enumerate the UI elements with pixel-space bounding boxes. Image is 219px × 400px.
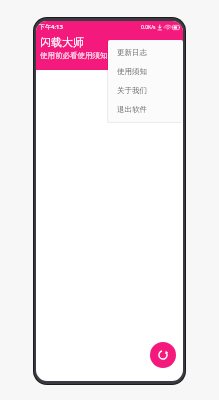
staticText: 更新日志: [117, 48, 147, 57]
button[interactable]: 使用须知: [108, 62, 183, 81]
staticText: 使用须知: [117, 67, 147, 76]
staticText: 闪载大师: [40, 35, 84, 49]
staticText: 使用前必看使用须知!!!: [40, 50, 114, 60]
button[interactable]: 关于我们: [108, 81, 183, 100]
staticText: 0.0K/s: [141, 24, 156, 31]
staticText: 退出软件: [117, 105, 147, 114]
staticText: 下午4:13: [39, 23, 63, 31]
button[interactable]: 退出软件: [108, 100, 183, 119]
button[interactable]: Refresh: [150, 342, 176, 368]
button[interactable]: 更新日志: [108, 43, 183, 62]
staticText: 关于我们: [117, 86, 147, 95]
